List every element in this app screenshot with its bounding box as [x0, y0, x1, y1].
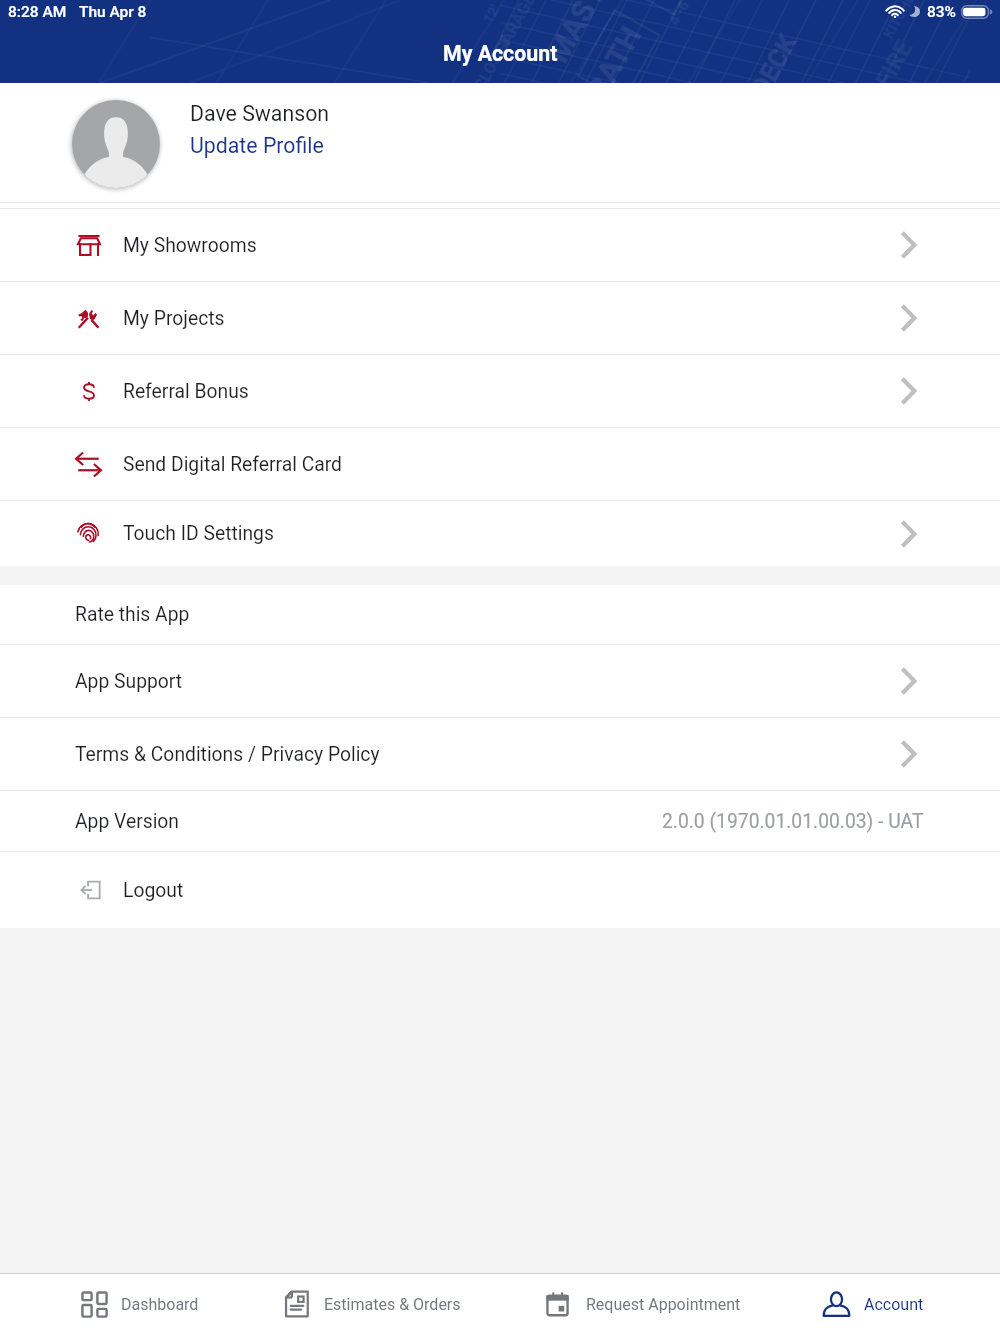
staticText: Update Profile	[190, 133, 324, 158]
staticText: 83%	[927, 3, 957, 21]
staticText: Send Digital Referral Card	[123, 453, 343, 476]
staticText: App Support	[75, 670, 183, 693]
button[interactable]: Account	[804, 1274, 942, 1334]
staticText: My Account	[443, 41, 558, 66]
button[interactable]: Terms & Conditions / Privacy Policy	[0, 718, 1000, 790]
staticText: Rate this App	[75, 603, 190, 626]
button[interactable]: Dave Swanson	[0, 83, 1000, 202]
staticText: Request Appointment	[586, 1295, 741, 1314]
button[interactable]: Send Digital Referral Card	[0, 428, 1000, 500]
button[interactable]: Touch ID Settings	[0, 501, 1000, 566]
button[interactable]: Logout	[0, 852, 1000, 928]
button[interactable]: Request Appointment	[526, 1274, 759, 1334]
staticText: App Version	[75, 810, 180, 833]
button[interactable]: Referral Bonus	[0, 355, 1000, 427]
staticText: Thu Apr 8	[79, 3, 147, 21]
staticText: 8:28 AM	[8, 3, 67, 21]
staticText: Estimates & Orders	[324, 1295, 461, 1314]
button[interactable]: Dashboard	[62, 1274, 217, 1334]
button[interactable]: My Showrooms	[0, 209, 1000, 281]
staticText: 2.0.0 (1970.01.01.00.03) - UAT	[662, 810, 924, 833]
staticText: Dashboard	[121, 1295, 199, 1314]
staticText: Account	[864, 1295, 924, 1314]
staticText: Dave Swanson	[190, 101, 330, 126]
staticText: My Projects	[123, 307, 225, 330]
staticText: Terms & Conditions / Privacy Policy	[75, 743, 380, 766]
staticText: My Showrooms	[123, 234, 257, 257]
button[interactable]: Rate this App	[0, 585, 1000, 644]
button[interactable]: Estimates and Orders	[265, 1274, 479, 1334]
staticText: Touch ID Settings	[123, 522, 274, 545]
staticText: Logout	[123, 879, 184, 902]
staticText: Referral Bonus	[123, 380, 249, 403]
button[interactable]: My Projects	[0, 282, 1000, 354]
button[interactable]: App Support	[0, 645, 1000, 717]
